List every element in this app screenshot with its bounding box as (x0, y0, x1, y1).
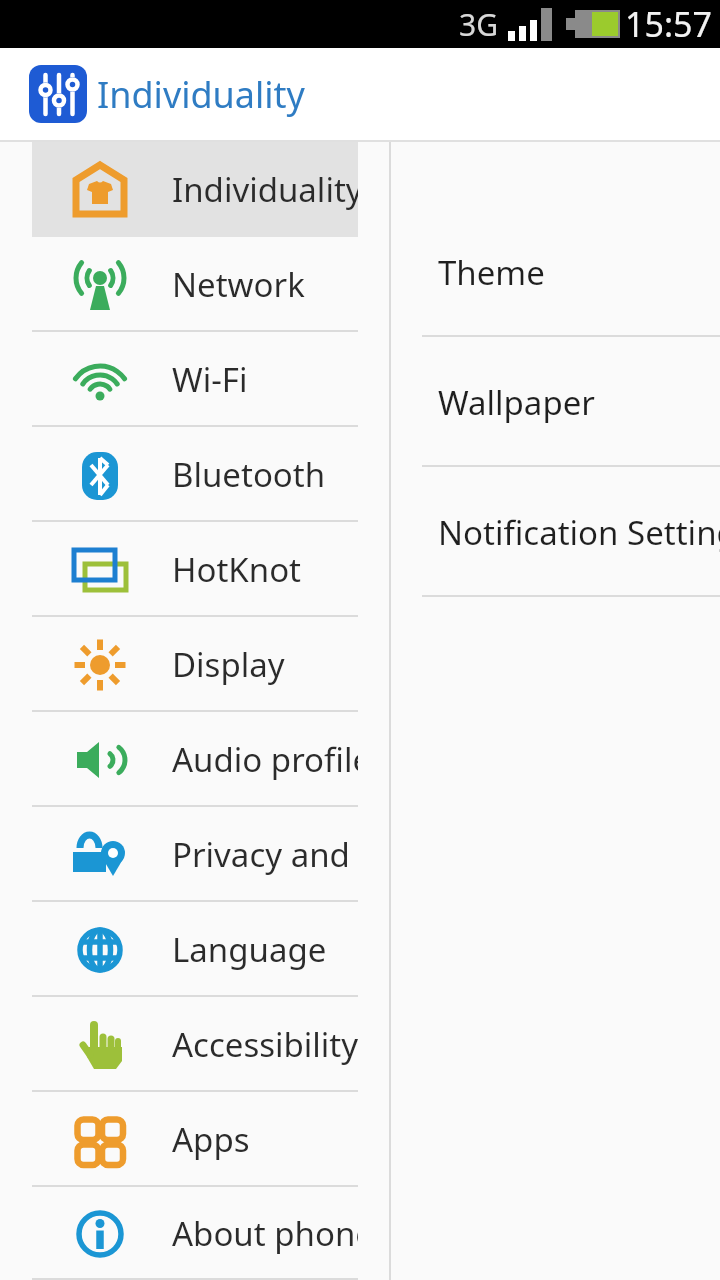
staticText: About phone (172, 1211, 358, 1256)
staticText: Wallpaper (438, 380, 595, 425)
button[interactable]: About phone (0, 1187, 389, 1280)
staticText: 3G (459, 4, 498, 45)
staticText: Accessibility (172, 1022, 358, 1067)
button[interactable]: Audio profiles (0, 712, 389, 807)
button[interactable]: Display (0, 617, 389, 712)
staticText: Wi-Fi (172, 357, 248, 402)
button[interactable]: Theme (391, 207, 720, 337)
staticText: Individuality (97, 70, 305, 119)
staticText: Audio profiles (172, 737, 358, 782)
button[interactable]: Privacy and (0, 807, 389, 902)
staticText: 15:57 (625, 1, 712, 47)
staticText: Language (172, 927, 327, 972)
button[interactable]: Bluetooth (0, 427, 389, 522)
staticText: HotKnot (172, 547, 302, 592)
button[interactable]: Notification Settings (391, 467, 720, 597)
staticText: Individuality (172, 167, 358, 212)
button[interactable]: Apps (0, 1092, 389, 1187)
button[interactable]: Network (0, 237, 389, 332)
staticText: Apps (172, 1117, 250, 1162)
staticText: Privacy and (172, 832, 350, 877)
button[interactable]: Language (0, 902, 389, 997)
staticText: Notification Settings (438, 510, 720, 555)
staticText: Display (172, 642, 285, 687)
staticText: Bluetooth (172, 452, 326, 497)
button[interactable]: Wi-Fi (0, 332, 389, 427)
staticText: Theme (438, 250, 545, 295)
button[interactable]: Accessibility (0, 997, 389, 1092)
button[interactable]: Wallpaper (391, 337, 720, 467)
button[interactable]: Individuality (0, 142, 389, 237)
button[interactable]: HotKnot (0, 522, 389, 617)
staticText: Network (172, 262, 305, 307)
